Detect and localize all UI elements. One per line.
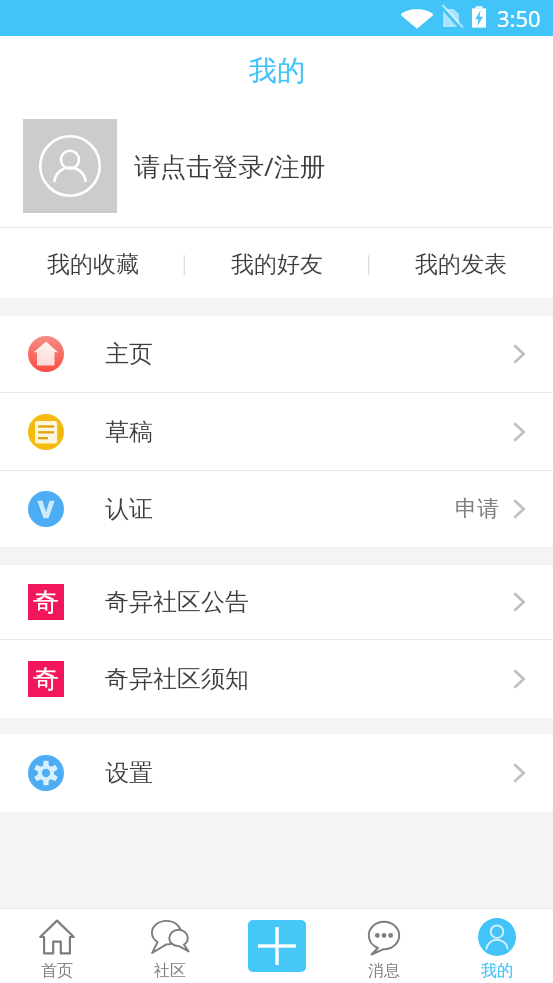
staticText: 首页 (41, 961, 73, 981)
staticText: 主页 (105, 339, 153, 369)
button[interactable]: 我的好友 (185, 228, 369, 298)
button[interactable]: 认证 (0, 471, 553, 547)
staticText: 3:50 (497, 3, 541, 33)
staticText: 我的 (481, 961, 513, 981)
staticText: 奇 (33, 586, 59, 619)
button[interactable]: 奇 (0, 565, 553, 639)
staticText: 设置 (105, 758, 153, 788)
button[interactable]: 请点击登录/注册 (0, 105, 553, 227)
staticText: 奇 (33, 663, 59, 696)
staticText: 请点击登录/注册 (134, 148, 326, 184)
button[interactable]: 发布 (248, 920, 306, 972)
button[interactable]: 主页 (0, 316, 553, 392)
button[interactable]: 设置 (0, 734, 553, 812)
staticText: 我的收藏 (47, 250, 139, 279)
button[interactable]: 我的发表 (369, 228, 553, 298)
button[interactable]: 社区 (113, 908, 226, 983)
staticText: 认证 (105, 494, 153, 524)
button[interactable]: 草稿 (0, 393, 553, 470)
staticText: 我的 (249, 53, 305, 88)
staticText: 消息 (368, 961, 400, 981)
staticText: 奇异社区公告 (105, 587, 249, 617)
staticText: 我的发表 (415, 250, 507, 279)
staticText: 社区 (154, 961, 186, 981)
staticText: 奇异社区须知 (105, 664, 249, 694)
button[interactable]: 消息 (327, 908, 440, 983)
staticText: 申请 (455, 495, 499, 523)
staticText: 草稿 (105, 417, 153, 447)
button[interactable]: 我的收藏 (0, 228, 185, 298)
button[interactable]: 我的 (440, 908, 553, 983)
button[interactable]: 首页 (0, 908, 113, 983)
staticText: 我的好友 (231, 250, 323, 279)
button[interactable]: 奇 (0, 640, 553, 718)
